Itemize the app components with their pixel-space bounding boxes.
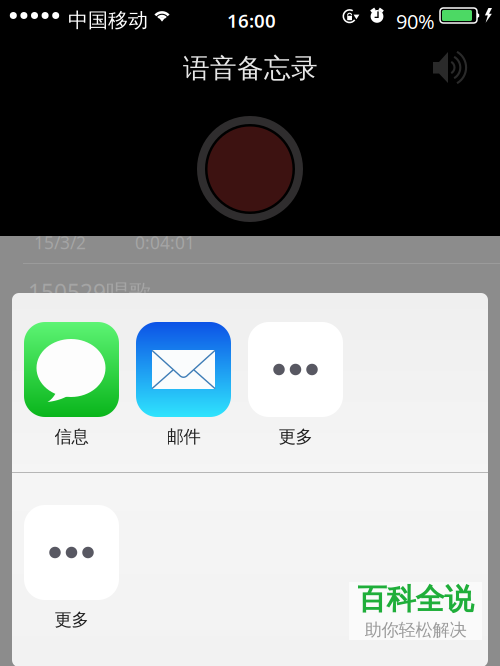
button[interactable]: Speaker bbox=[433, 51, 473, 85]
staticText: 中国移动 bbox=[68, 8, 148, 33]
staticText: 邮件 bbox=[166, 426, 200, 447]
staticText: 助你轻松解决 bbox=[364, 619, 466, 641]
staticText: 信息 bbox=[54, 426, 88, 447]
staticText: 15/3/2 bbox=[34, 231, 86, 254]
button[interactable]: 更多 bbox=[248, 322, 343, 447]
staticText: 90% bbox=[396, 8, 435, 35]
staticText: 更多 bbox=[278, 426, 312, 447]
staticText: 16:00 bbox=[227, 8, 276, 33]
staticText: 语音备忘录 bbox=[183, 52, 318, 85]
staticText: 百科全说 bbox=[357, 581, 473, 617]
button[interactable]: 信息 bbox=[24, 322, 119, 447]
staticText: 150529唱歌 bbox=[28, 277, 152, 307]
button[interactable]: 更多 bbox=[24, 505, 119, 630]
staticText: 0:04:01 bbox=[135, 231, 195, 254]
button[interactable]: Record bbox=[195, 114, 305, 224]
button[interactable]: 邮件 bbox=[136, 322, 231, 447]
staticText: 更多 bbox=[54, 609, 88, 630]
